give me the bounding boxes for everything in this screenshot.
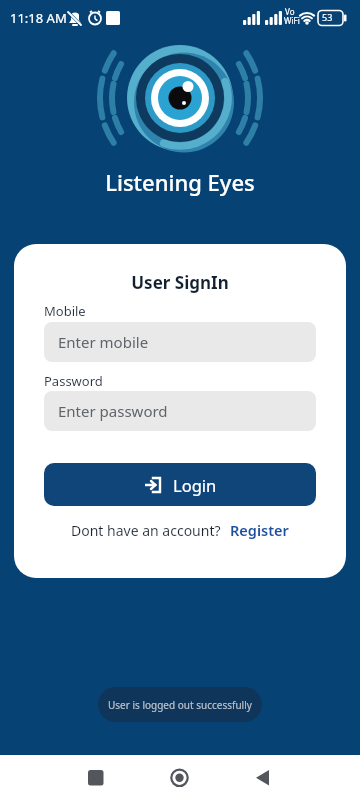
staticText: Mobile (44, 302, 86, 320)
staticText: User is logged out successfully (108, 698, 252, 712)
staticText: Enter password (58, 401, 168, 421)
staticText: 11:18 AM (10, 9, 67, 27)
button[interactable] (167, 765, 193, 791)
button[interactable]: Enter password (44, 391, 316, 431)
staticText: Password (44, 372, 103, 390)
staticText: Dont have an account? (71, 521, 221, 540)
staticText: User SignIn (14, 271, 346, 294)
button[interactable] (251, 765, 277, 791)
staticText: WiFi (284, 15, 300, 26)
staticText: Login (173, 474, 217, 496)
staticText: Listening Eyes (0, 167, 360, 197)
staticText: 53 (322, 11, 333, 23)
button[interactable]: Enter mobile (44, 322, 316, 362)
button[interactable] (83, 765, 109, 791)
staticText: Vo (285, 6, 295, 17)
staticText: Enter mobile (58, 332, 149, 352)
button[interactable]: Register (230, 520, 289, 540)
button[interactable]: Login (44, 463, 316, 506)
